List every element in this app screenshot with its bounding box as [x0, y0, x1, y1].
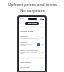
- button[interactable]: Vehicle option: [37, 43, 40, 46]
- staticText: Affordable everyday rides: [20, 37, 39, 39]
- button[interactable]: Get a ride: [25, 22, 39, 25]
- button[interactable]: Comfort: [19, 40, 45, 48]
- staticText: Trip details: [20, 61, 31, 64]
- staticText: $18: [41, 36, 44, 38]
- button[interactable]: Standard: [19, 34, 45, 40]
- staticText: Newer cars, extra legroom: [20, 43, 37, 47]
- staticText: Get a ride: [28, 22, 37, 25]
- staticText: 9:41: [20, 17, 24, 20]
- staticText: No surprises: [20, 8, 45, 13]
- staticText: Choose a ride: [20, 30, 34, 33]
- staticText: $18: [41, 51, 44, 53]
- button[interactable]: Share and save today: [19, 48, 45, 56]
- button[interactable]: Pickup now: [19, 65, 45, 69]
- staticText: Share and save today: [20, 49, 39, 51]
- staticText: Cheaper rides, few extra stops: [20, 51, 41, 55]
- staticText: Standard: [20, 35, 28, 37]
- staticText: Pickup now: [20, 66, 30, 68]
- staticText: Comfort: [20, 41, 28, 43]
- staticText: $18: [41, 43, 44, 45]
- staticText: Upfront prices and terms: [8, 2, 57, 7]
